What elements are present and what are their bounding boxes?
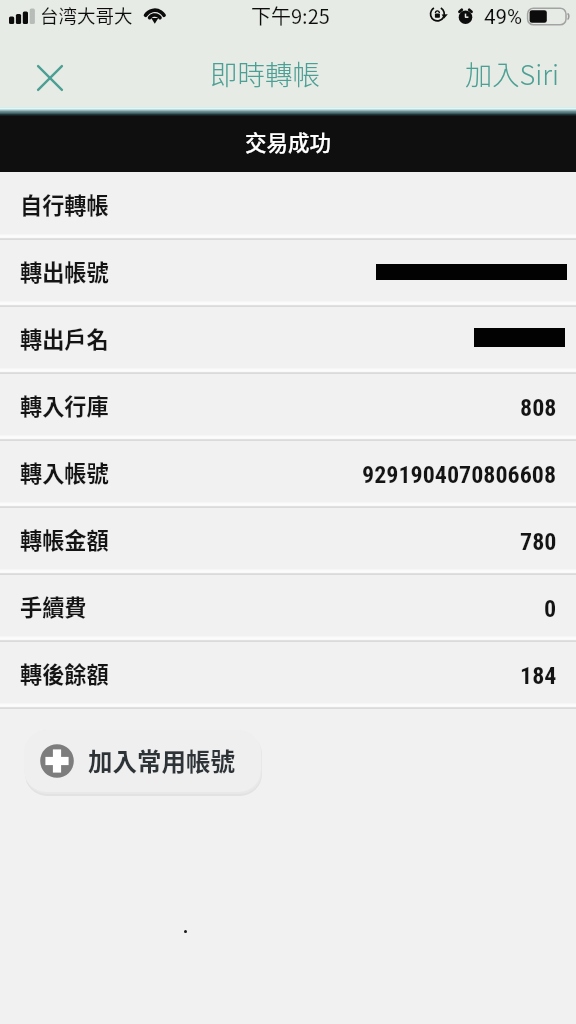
staticText: 自行轉帳 <box>20 188 109 220</box>
staticText: 轉後餘額 <box>20 657 109 689</box>
staticText: 轉出戶名 <box>20 322 109 354</box>
staticText: 轉帳金額 <box>20 523 109 555</box>
staticText: 即時轉帳 <box>210 53 320 93</box>
staticText: 交易成功 <box>245 126 332 157</box>
button[interactable]: 自行轉帳 <box>0 172 576 239</box>
button[interactable]: 加入常用帳號 <box>24 730 261 792</box>
staticText: 加入Siri <box>465 53 559 92</box>
staticText: 轉入帳號 <box>20 456 109 488</box>
staticText: 808 <box>520 394 557 422</box>
button[interactable]: 轉入帳號 <box>0 440 576 507</box>
staticText: 780 <box>520 528 557 556</box>
button[interactable]: 轉帳金額 <box>0 507 576 574</box>
button[interactable]: Close <box>26 54 74 102</box>
button[interactable]: 轉後餘額 <box>0 641 576 708</box>
staticText: 184 <box>520 662 557 690</box>
staticText: 0 <box>544 595 557 623</box>
staticText: 手續費 <box>20 590 87 622</box>
button[interactable]: 手續費 <box>0 574 576 641</box>
staticText: 49% <box>484 5 523 29</box>
button[interactable]: 轉出帳號 <box>0 239 576 306</box>
staticText: 轉入行庫 <box>20 389 109 421</box>
button[interactable]: 加入Siri <box>451 46 573 98</box>
staticText: 加入常用帳號 <box>88 743 235 778</box>
staticText: 下午9:25 <box>251 1 330 30</box>
staticText: 轉出帳號 <box>20 255 109 287</box>
staticText: 台湾大哥大 <box>40 2 133 29</box>
staticText: 9291904070806608 <box>362 461 557 489</box>
button[interactable]: 轉入行庫 <box>0 373 576 440</box>
button[interactable]: 轉出戶名 <box>0 306 576 373</box>
